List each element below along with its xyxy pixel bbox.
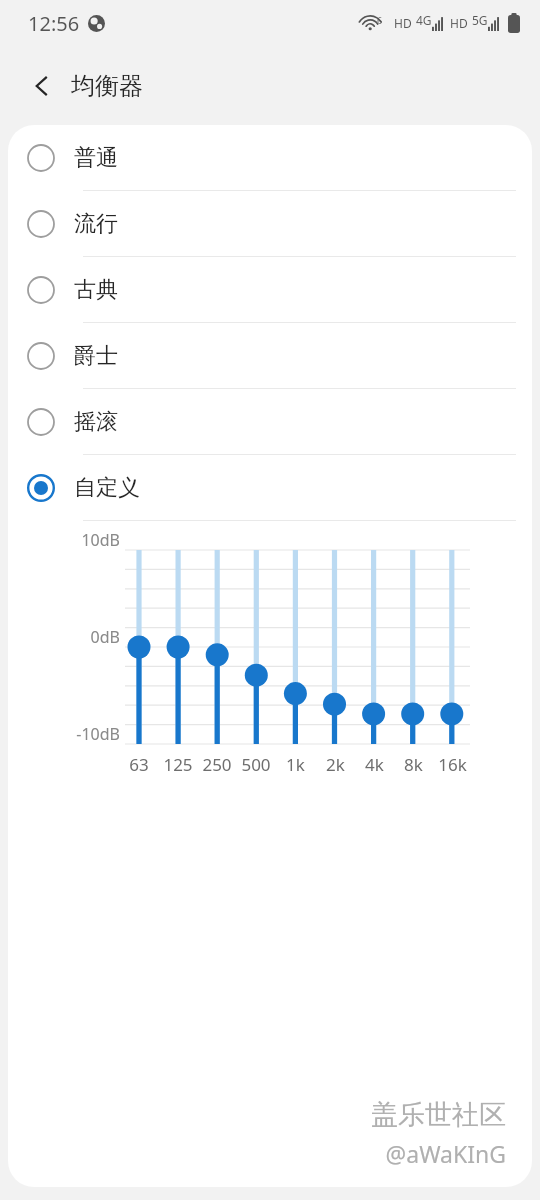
staticText: 均衡器 <box>71 71 143 101</box>
staticText: 125 <box>163 753 193 776</box>
button[interactable]: 摇滚 <box>8 389 532 454</box>
staticText: HD <box>450 15 468 31</box>
staticText: 5G <box>472 12 488 28</box>
staticText: 摇滚 <box>74 408 118 436</box>
staticText: 流行 <box>74 210 118 238</box>
button[interactable]: 普通 <box>8 125 532 190</box>
staticText: 1k <box>286 753 305 776</box>
staticText: 古典 <box>74 276 118 304</box>
staticText: 12:56 <box>28 10 80 37</box>
staticText: 0dB <box>90 626 120 648</box>
staticText: 63 <box>129 753 149 776</box>
staticText: 8k <box>404 753 423 776</box>
staticText: @aWaKInG <box>385 1138 506 1169</box>
staticText: 普通 <box>74 144 118 172</box>
staticText: 4k <box>365 753 384 776</box>
staticText: 自定义 <box>74 474 140 502</box>
button[interactable]: Back <box>20 64 64 108</box>
staticText: 2k <box>326 753 345 776</box>
staticText: 10dB <box>81 529 120 551</box>
staticText: 250 <box>202 753 232 776</box>
button[interactable]: 流行 <box>8 191 532 256</box>
staticText: HD <box>394 15 412 31</box>
staticText: 6 <box>377 14 383 26</box>
button[interactable]: 自定义 <box>8 455 532 520</box>
staticText: 爵士 <box>74 342 118 370</box>
button[interactable]: 古典 <box>8 257 532 322</box>
staticText: 4G <box>416 12 432 28</box>
staticText: 盖乐世社区 <box>371 1098 506 1132</box>
staticText: -10dB <box>76 723 120 745</box>
staticText: 500 <box>241 753 271 776</box>
staticText: 16k <box>438 753 467 776</box>
button[interactable]: 爵士 <box>8 323 532 388</box>
